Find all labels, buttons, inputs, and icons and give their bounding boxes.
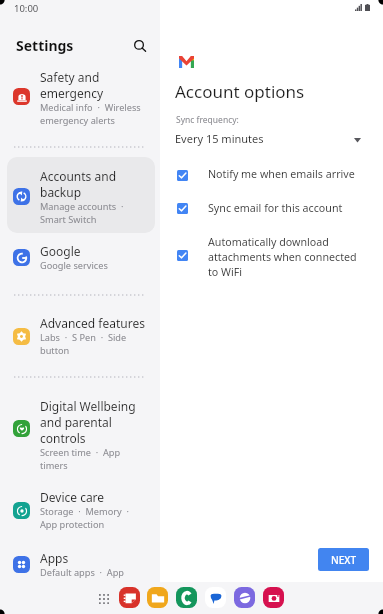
button[interactable]: Messages [205,587,226,608]
staticText: timers [40,459,68,472]
staticText: Every 15 minutes [175,131,264,146]
staticText: and parental [40,414,112,430]
staticText: emergency [40,85,104,101]
button[interactable]: Sync email for this account [170,199,370,219]
button[interactable]: Notify me when emails arrive [170,165,370,185]
staticText: Storage · Memory · [40,505,129,518]
staticText: Medical info · Wireless [40,101,141,114]
staticText: button [40,344,70,357]
staticText: Accounts and [40,168,117,184]
staticText: Smart Switch [40,213,97,226]
staticText: Apps [40,550,69,566]
staticText: Screen time · App [40,446,121,459]
staticText: Safety and [40,69,100,85]
staticText: Notify me when emails arrive [208,167,355,182]
staticText: controls [40,430,86,446]
staticText: to WiFi [208,265,243,280]
staticText: Device care [40,489,105,505]
button[interactable]: Search [128,34,152,58]
button[interactable]: Internet [234,587,255,608]
staticText: Default apps · App [40,566,125,579]
button[interactable] [7,157,155,233]
staticText: Manage accounts · [40,200,124,213]
staticText: Labs · S Pen · Side [40,331,127,344]
staticText: Account options [175,80,305,103]
button[interactable]: My Files [147,587,168,608]
staticText: App protection [40,518,105,531]
staticText: Settings [16,36,74,55]
button[interactable]: NEXT [318,548,369,571]
button[interactable]: Camera [263,587,284,608]
staticText: Google services [40,259,108,272]
button[interactable]: Automatically download [170,233,370,282]
staticText: emergency alerts [40,114,115,127]
staticText: Digital Wellbeing [40,398,136,414]
button[interactable]: Samsung Notes [119,587,140,608]
staticText: Advanced features [40,315,145,331]
staticText: Google [40,243,81,259]
staticText: Automatically download [208,235,329,250]
staticText: Sync email for this account [208,201,343,216]
staticText: NEXT [331,553,357,567]
staticText: attachments when connected [208,250,357,265]
staticText: backup [40,184,82,200]
staticText: 10:00 [14,2,39,15]
staticText: Sync frequency: [176,114,239,126]
button[interactable]: All apps [93,588,114,609]
button[interactable]: Phone [176,587,197,608]
